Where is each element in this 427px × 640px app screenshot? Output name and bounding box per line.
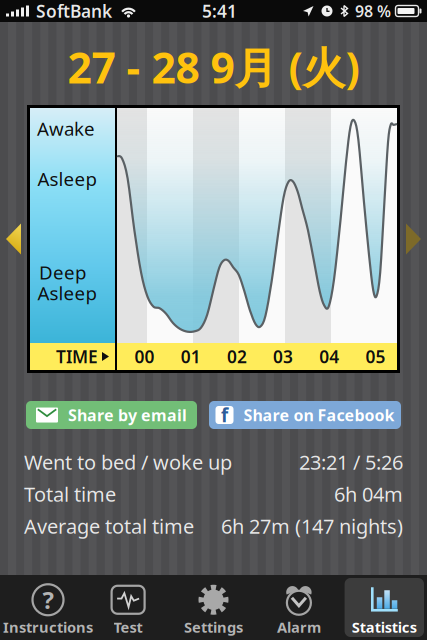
staticText: 01: [181, 345, 201, 368]
staticText: Share by email: [68, 404, 187, 426]
staticText: 02: [227, 345, 247, 368]
staticText: 98 %: [355, 0, 391, 22]
staticText: 6h 04m: [334, 481, 403, 507]
staticText: Test: [114, 617, 143, 637]
staticText: 03: [273, 345, 293, 368]
button[interactable]: Alarm: [256, 575, 342, 640]
staticText: Total time: [24, 481, 116, 507]
button[interactable]: Settings: [171, 575, 256, 640]
staticText: Asleep: [37, 166, 96, 191]
staticText: Went to bed / woke up: [24, 449, 232, 475]
button[interactable]: Share by email: [26, 401, 197, 429]
staticText: Settings: [184, 617, 243, 637]
staticText: 6h 27m (147 nights): [221, 513, 403, 539]
staticText: Statistics: [352, 617, 417, 637]
staticText: Deep: [39, 260, 86, 285]
staticText: TIME: [56, 345, 98, 368]
staticText: Share on Facebook: [243, 404, 394, 426]
staticText: 05: [365, 345, 385, 368]
button[interactable]: ?: [0, 575, 85, 640]
staticText: 04: [319, 345, 339, 368]
staticText: Alarm: [277, 617, 321, 637]
staticText: Awake: [37, 116, 95, 141]
button[interactable]: Statistics: [342, 575, 427, 640]
staticText: Average total time: [24, 513, 194, 539]
staticText: Instructions: [3, 617, 93, 637]
button[interactable]: f: [209, 401, 401, 429]
button[interactable]: Next night: [400, 105, 427, 373]
staticText: f: [221, 403, 228, 427]
staticText: 27 - 28 9月 (火): [67, 39, 359, 95]
staticText: Asleep: [37, 281, 96, 305]
staticText: 5:41: [202, 0, 237, 22]
staticText: 23:21 / 5:26: [299, 449, 403, 475]
staticText: 00: [134, 345, 154, 368]
staticText: ?: [42, 584, 53, 616]
button[interactable]: Test: [85, 575, 171, 640]
staticText: SoftBank: [36, 0, 112, 22]
button[interactable]: Previous night: [0, 105, 27, 373]
